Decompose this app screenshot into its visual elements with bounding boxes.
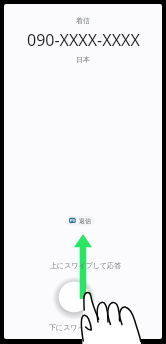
- button[interactable]: 返信: [65, 216, 95, 226]
- button[interactable]: Answer call: [53, 276, 95, 318]
- staticText: 下にスワイプして拒否: [49, 323, 121, 332]
- staticText: 返信: [79, 217, 91, 225]
- staticText: 090-XXXX-XXXX: [27, 29, 140, 51]
- staticText: 上にスワイプして応答: [50, 261, 122, 270]
- staticText: 着信: [76, 16, 90, 25]
- staticText: 日本: [76, 55, 90, 64]
